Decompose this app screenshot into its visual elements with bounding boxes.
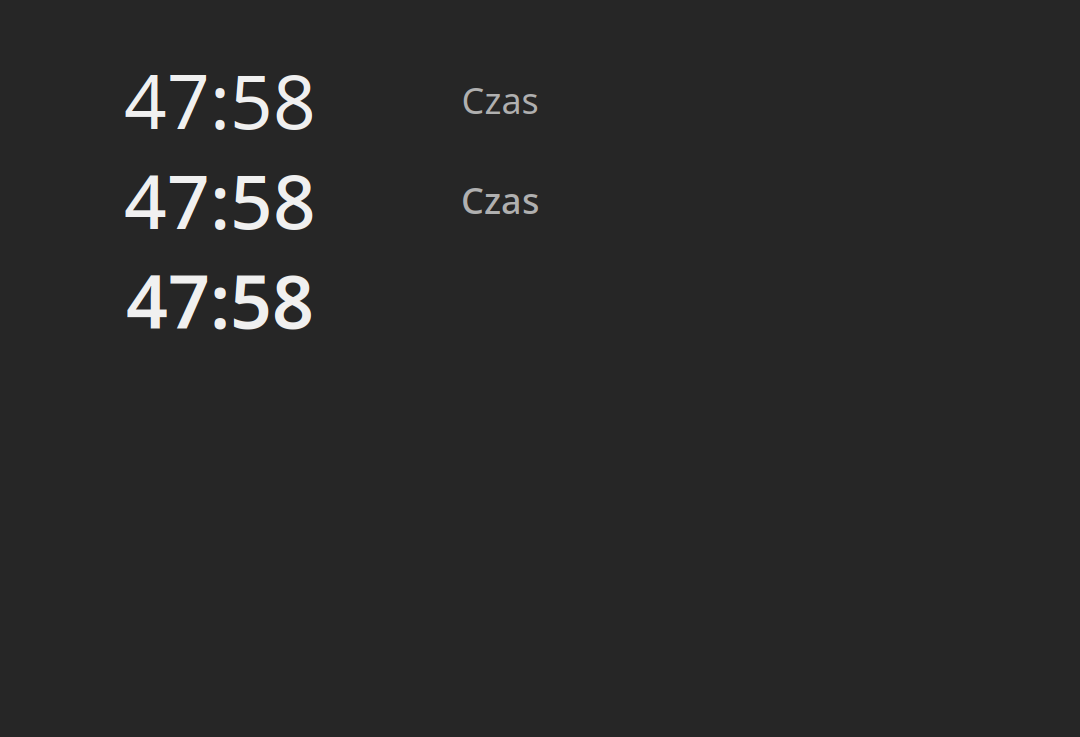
staticText: 47:58 (126, 251, 314, 349)
staticText: Czas (461, 176, 539, 224)
staticText: Czas (461, 76, 538, 124)
staticText: 47:58 (124, 150, 316, 250)
staticText: 47:58 (124, 50, 316, 150)
